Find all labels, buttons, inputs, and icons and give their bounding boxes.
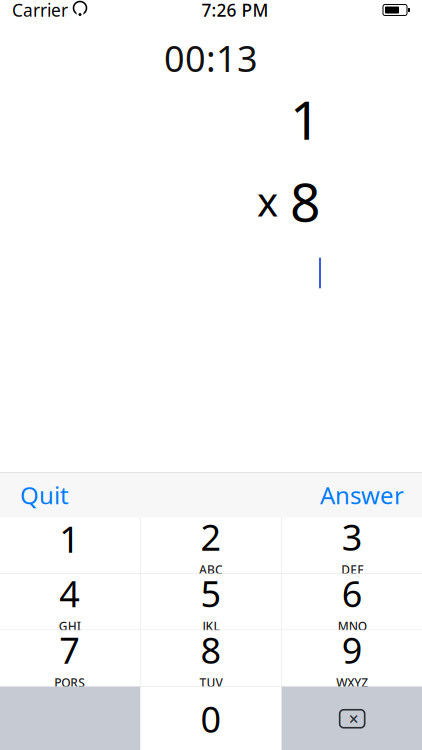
staticText: GHI — [59, 618, 81, 634]
staticText: 1 — [290, 84, 321, 154]
button[interactable]: Delete — [282, 687, 422, 750]
staticText: x — [257, 174, 278, 227]
staticText: 7:26 PM — [201, 0, 268, 21]
staticText: × — [349, 707, 359, 730]
staticText: 6 — [342, 569, 363, 617]
button[interactable]: 5 — [141, 574, 281, 630]
button[interactable]: 8 — [141, 630, 281, 686]
staticText: PQRS — [54, 675, 85, 691]
button[interactable]: 0 — [141, 687, 281, 750]
button[interactable]: 6 — [282, 574, 422, 630]
staticText: 8 — [200, 626, 221, 674]
staticText: 7 — [59, 626, 80, 674]
staticText: 8 — [290, 166, 321, 236]
button[interactable]: Quit — [0, 467, 89, 523]
staticText: JKL — [202, 618, 219, 634]
button[interactable]: 9 — [282, 630, 422, 686]
staticText: 4 — [59, 569, 80, 617]
staticText: Carrier — [12, 0, 68, 21]
staticText: MNO — [338, 618, 367, 634]
staticText: TUV — [199, 675, 222, 691]
staticText: 1 — [59, 515, 80, 563]
staticText: Answer — [320, 479, 404, 511]
button[interactable]: Answer — [302, 467, 422, 523]
staticText: 0 — [200, 695, 221, 743]
staticText: 5 — [200, 569, 221, 617]
staticText: DEF — [341, 562, 363, 578]
button[interactable]: 4 — [0, 574, 140, 630]
button[interactable]: 7 — [0, 630, 140, 686]
staticText: 00:13 — [164, 34, 258, 82]
staticText: 2 — [200, 513, 221, 561]
staticText: 3 — [342, 513, 363, 561]
staticText: ABC — [199, 562, 223, 578]
button[interactable]: 3 — [282, 517, 422, 573]
button[interactable]: 1 — [0, 517, 140, 573]
button[interactable]: 2 — [141, 517, 281, 573]
staticText: 9 — [342, 626, 363, 674]
staticText: WXYZ — [336, 675, 368, 691]
staticText: Quit — [20, 479, 69, 511]
